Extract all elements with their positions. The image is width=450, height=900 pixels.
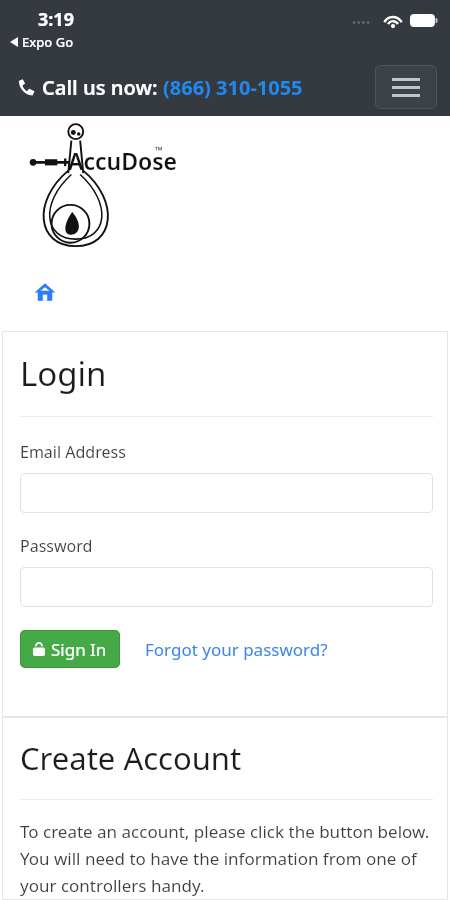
staticText: Password [20,535,93,557]
staticText: Create Account [20,737,242,779]
button[interactable]: Sign In [20,630,120,668]
button[interactable]: Call us now: [18,74,303,101]
staticText: 3:19 [38,7,74,32]
staticText: Login [20,351,107,396]
button[interactable] [20,473,433,513]
staticText: Expo Go [22,33,74,51]
staticText: Call us now: [42,74,163,101]
button[interactable] [20,567,433,607]
button[interactable]: Home [32,279,58,305]
button[interactable]: Forgot your password? [145,638,328,661]
staticText: Email Address [20,441,126,463]
staticText: (866) 310-1055 [163,74,303,101]
staticText: AccuDose [68,145,178,176]
staticText: To create an account, please click the b… [20,820,433,897]
button[interactable]: Open menu [375,65,437,109]
staticText: ™ [155,143,163,157]
staticText: Sign In [51,638,107,661]
